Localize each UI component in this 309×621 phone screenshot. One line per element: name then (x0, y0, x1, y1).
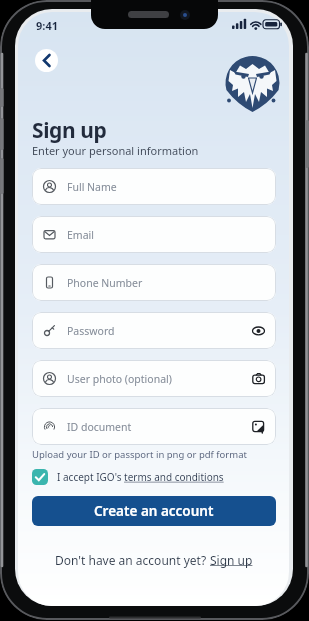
staticText: Sign up (32, 116, 107, 145)
button[interactable]: Full Name (32, 168, 276, 205)
staticText: Email (67, 228, 94, 242)
staticText: Upload your ID or passport in png or pdf… (32, 448, 247, 461)
staticText: Enter your personal information (32, 143, 199, 158)
button[interactable]: Create an account (32, 496, 276, 526)
button[interactable] (35, 49, 58, 72)
button[interactable]: Email (32, 216, 276, 253)
button[interactable]: I accept IGO's terms and conditions (32, 469, 224, 485)
button[interactable]: Sign up (210, 552, 253, 568)
button[interactable]: ID document (32, 408, 276, 445)
staticText: Create an account (94, 502, 214, 520)
staticText: Full Name (67, 180, 117, 194)
staticText: 9:41 (36, 18, 58, 33)
button[interactable]: Password (32, 312, 276, 349)
staticText: User photo (optional) (67, 372, 172, 386)
button[interactable]: User photo (optional) (32, 360, 276, 397)
button[interactable]: Phone Number (32, 264, 276, 301)
staticText: Password (67, 324, 115, 338)
staticText: Phone Number (67, 276, 143, 290)
staticText: ID document (67, 420, 132, 434)
staticText: Don't have an account yet? (55, 552, 210, 568)
staticText: I accept IGO's terms and conditions (57, 470, 224, 484)
